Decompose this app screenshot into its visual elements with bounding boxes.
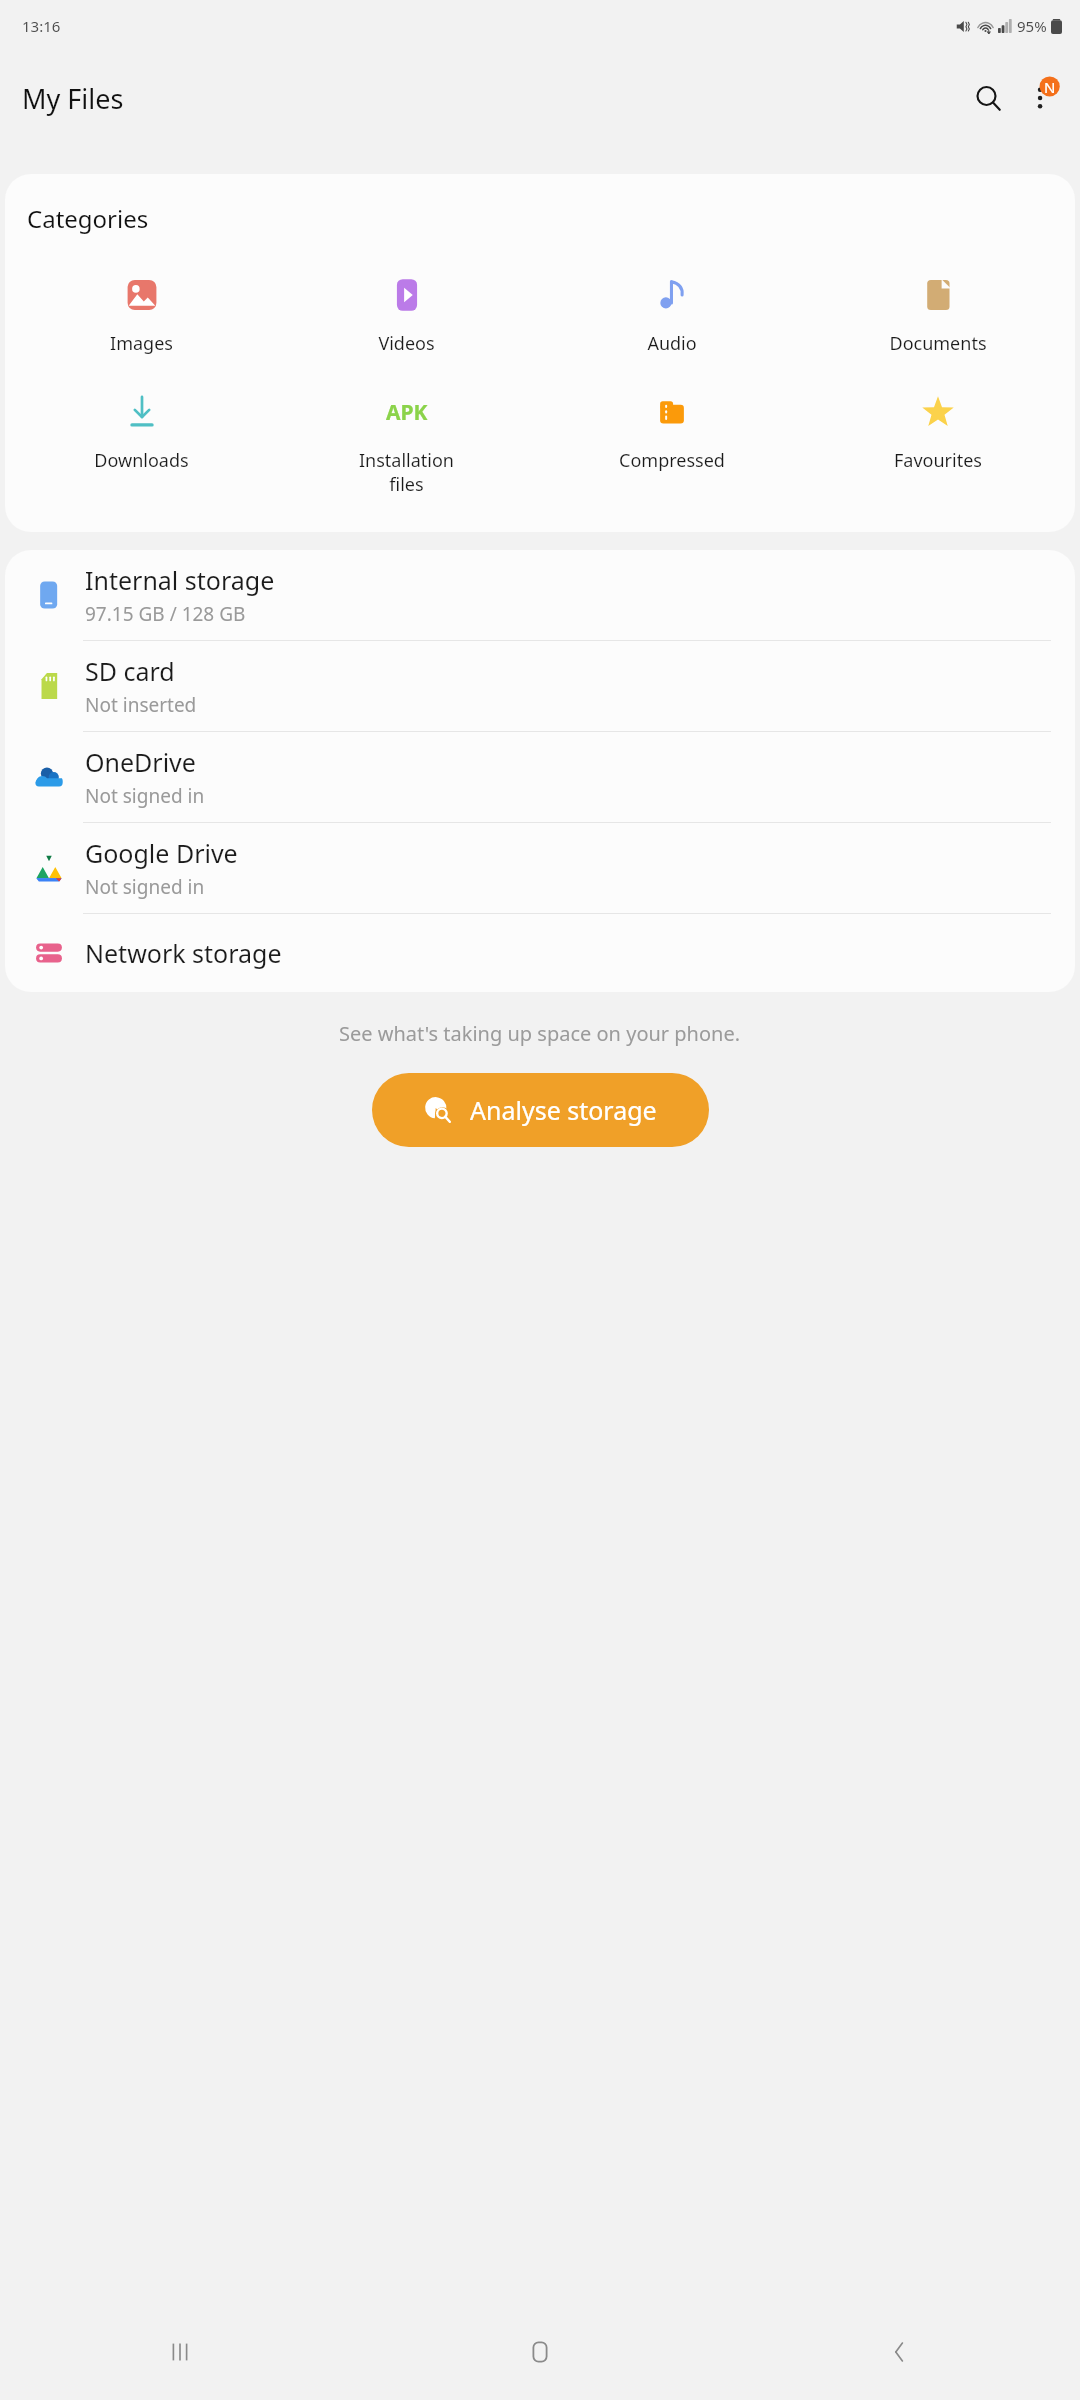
button[interactable]: Images — [9, 271, 274, 358]
button[interactable]: Recents — [0, 2304, 360, 2400]
button[interactable]: Network storage — [5, 914, 1075, 992]
staticText: See what's taking up space on your phone… — [339, 1020, 741, 1047]
staticText: 95% — [1017, 16, 1047, 36]
staticText: Audio — [647, 331, 697, 356]
button[interactable]: Downloads — [9, 388, 274, 475]
button[interactable]: Back — [720, 2304, 1080, 2400]
staticText: Network storage — [85, 936, 282, 970]
staticText: Documents — [889, 331, 987, 356]
button[interactable]: OneDrive — [5, 732, 1075, 822]
button[interactable]: Internal storage — [5, 550, 1075, 640]
button[interactable]: APK — [274, 388, 539, 498]
button[interactable]: Search — [964, 74, 1012, 122]
button[interactable]: SD card — [5, 641, 1075, 731]
staticText: 97.15 GB / 128 GB — [85, 601, 246, 627]
staticText: Compressed — [619, 448, 725, 473]
staticText: Not signed in — [85, 874, 205, 900]
button[interactable]: Analyse storage — [372, 1073, 709, 1147]
staticText: OneDrive — [85, 745, 196, 779]
button[interactable]: Home — [360, 2304, 720, 2400]
staticText: SD card — [85, 654, 175, 688]
staticText: Downloads — [94, 448, 189, 473]
staticText: Videos — [378, 331, 435, 356]
staticText: Not inserted — [85, 692, 197, 718]
staticText: Images — [110, 331, 173, 356]
button[interactable]: Favourites — [805, 388, 1071, 475]
button[interactable]: Audio — [539, 271, 805, 358]
staticText: Categories — [27, 202, 149, 235]
button[interactable]: Google Drive — [5, 823, 1075, 913]
button[interactable]: Compressed — [539, 388, 805, 475]
staticText: APK — [386, 398, 428, 427]
staticText: My Files — [22, 80, 124, 117]
staticText: Not signed in — [85, 783, 205, 809]
staticText: N — [1044, 77, 1056, 97]
staticText: Analyse storage — [470, 1093, 657, 1127]
staticText: 13:16 — [22, 16, 61, 36]
button[interactable]: Videos — [274, 271, 539, 358]
staticText: Google Drive — [85, 836, 238, 870]
button[interactable]: Documents — [805, 271, 1071, 358]
staticText: Internal storage — [85, 563, 275, 597]
staticText: Installation files — [359, 448, 454, 496]
button[interactable]: More options — [1018, 74, 1066, 122]
staticText: Favourites — [894, 448, 982, 473]
